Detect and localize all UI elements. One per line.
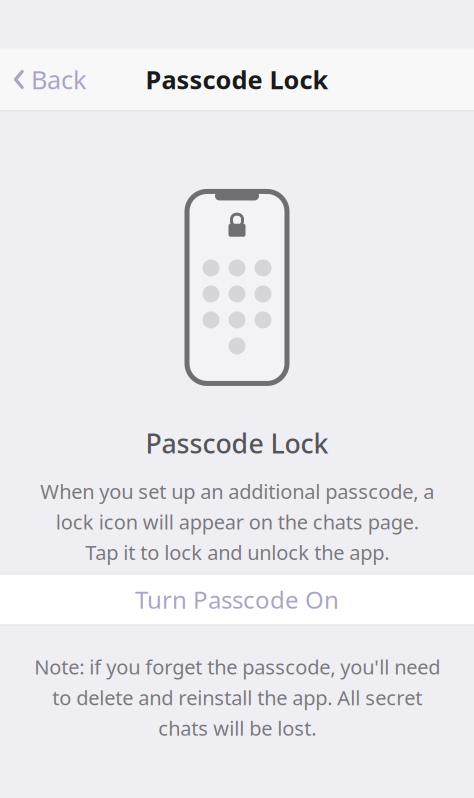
button[interactable]: Back — [0, 55, 87, 104]
button[interactable]: Turn Passcode On — [0, 574, 474, 624]
staticText: Passcode Lock — [145, 425, 328, 461]
staticText: Note: if you forget the passcode, you'll… — [34, 653, 440, 741]
staticText: Turn Passcode On — [135, 584, 339, 615]
staticText: When you set up an additional passcode, … — [40, 478, 434, 566]
staticText: Passcode Lock — [145, 63, 328, 96]
staticText: Back — [31, 63, 87, 96]
